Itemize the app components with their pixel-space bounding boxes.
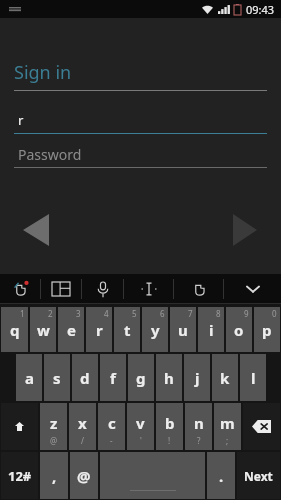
button[interactable]: Cursor control [124,274,173,304]
staticText: 8 [216,308,221,319]
button[interactable]: Previous [14,208,58,252]
button[interactable]: Input method [0,274,40,304]
staticText: Password [18,145,82,164]
staticText: ? [197,435,201,446]
staticText: o [234,320,244,340]
staticText: l [251,368,256,388]
staticText: s [53,368,61,388]
staticText: - [110,435,113,446]
button[interactable]: Password [14,143,267,167]
button[interactable]: Symbols [1,452,38,499]
staticText: 12# [8,467,32,485]
staticText: t [124,320,131,340]
button[interactable]: a [16,354,42,401]
staticText: 4 [104,308,109,319]
button[interactable]: b [156,403,183,450]
button[interactable]: , [40,452,68,499]
button[interactable]: Hide keyboard [224,274,281,304]
staticText: @ [50,435,58,446]
staticText: 2 [48,308,53,319]
button[interactable]: o [226,307,252,352]
button[interactable]: r [14,109,267,133]
staticText: n [194,413,204,433]
staticText: f [110,368,116,388]
button[interactable]: r [86,307,112,352]
button[interactable]: w [30,307,56,352]
staticText: Next [244,468,273,484]
button[interactable]: Language [41,274,81,304]
staticText: d [80,368,90,388]
button[interactable]: m [214,403,241,450]
button[interactable]: Next [223,208,267,252]
button[interactable]: . [207,452,235,499]
button[interactable]: q [1,307,28,352]
button[interactable]: p [254,307,280,352]
button[interactable]: h [156,354,182,401]
staticText: k [220,368,230,388]
staticText: m [220,413,235,433]
staticText: a [25,368,34,388]
staticText: i [209,320,214,340]
staticText: r [96,320,103,340]
button[interactable]: v [127,403,154,450]
staticText: g [136,368,146,388]
staticText: b [165,413,175,433]
button[interactable]: g [128,354,154,401]
staticText: 0 [272,308,277,319]
button[interactable]: n [185,403,212,450]
button[interactable]: d [72,354,98,401]
staticText: 6 [160,308,165,319]
button[interactable]: i [198,307,224,352]
button[interactable]: s [44,354,70,401]
staticText: ! [168,435,171,446]
staticText: 5 [132,308,137,319]
button[interactable]: Shift [1,403,38,450]
staticText: 09:43 [246,2,275,17]
button[interactable]: Gesture [174,274,223,304]
button[interactable]: f [100,354,126,401]
staticText: e [67,320,76,340]
staticText: w [37,320,50,340]
staticText: 3 [76,308,81,319]
button[interactable]: Voice input [82,274,123,304]
staticText: / [81,435,84,446]
button[interactable]: u [170,307,196,352]
button[interactable]: Next [237,452,280,499]
staticText: c [108,413,116,433]
button[interactable]: l [240,354,266,401]
button[interactable]: k [212,354,238,401]
staticText: , [52,466,57,486]
staticText: u [178,320,188,340]
staticText: ; [226,435,229,446]
button[interactable]: c [98,403,125,450]
button[interactable]: z [40,403,67,450]
staticText: 1 [20,308,25,319]
staticText: j [195,368,200,388]
staticText: ' [140,435,142,446]
button[interactable]: y [142,307,168,352]
button[interactable]: @ [70,452,98,499]
staticText: 7 [188,308,193,319]
staticText: r [18,111,24,129]
staticText: @ [77,466,91,486]
button[interactable]: x [69,403,96,450]
staticText: x [78,413,87,433]
staticText: . [219,466,224,486]
staticText: q [10,320,20,340]
button[interactable]: t [114,307,140,352]
staticText: p [262,320,272,340]
staticText: y [151,320,160,340]
button[interactable]: e [58,307,84,352]
button[interactable]: Delete [243,403,280,450]
staticText: Sign in [14,60,72,85]
staticText: z [50,413,58,433]
button[interactable]: j [184,354,210,401]
staticText: h [164,368,174,388]
staticText: 9 [244,308,249,319]
staticText: v [136,413,145,433]
